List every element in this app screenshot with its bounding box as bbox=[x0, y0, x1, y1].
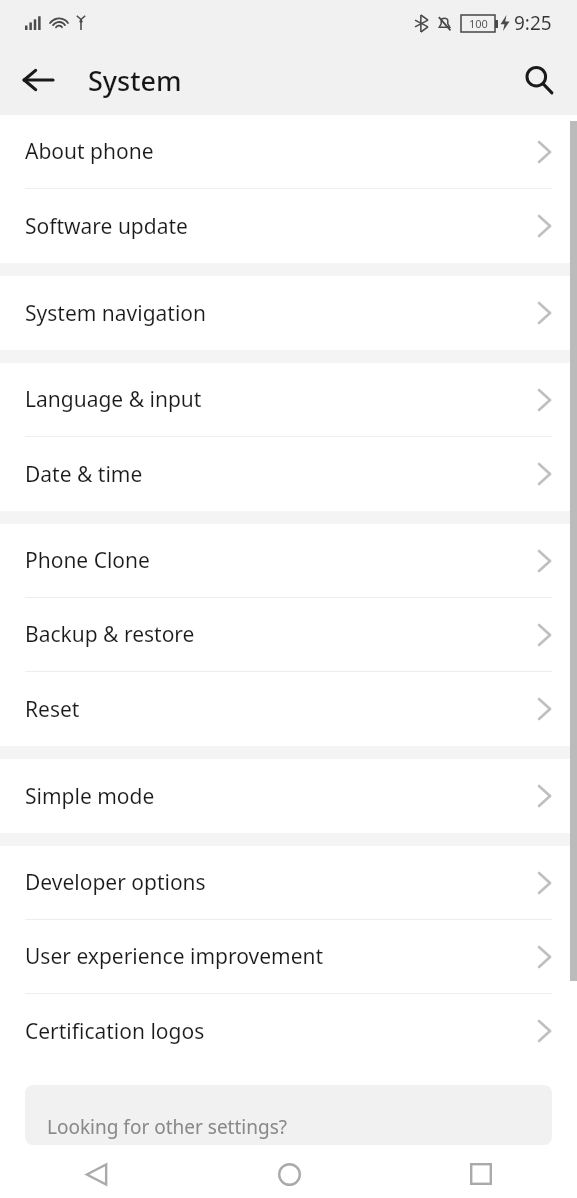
button[interactable]: Date & time bbox=[0, 437, 577, 511]
button[interactable]: System navigation bbox=[0, 276, 577, 350]
button[interactable]: Backup & restore bbox=[0, 598, 577, 671]
button[interactable]: About phone bbox=[0, 115, 577, 188]
staticText: Reset bbox=[25, 695, 538, 724]
button[interactable]: Search bbox=[511, 52, 567, 108]
button[interactable]: Simple mode bbox=[0, 759, 577, 833]
button[interactable]: Software update bbox=[0, 189, 577, 263]
staticText: System navigation bbox=[25, 299, 538, 328]
button[interactable]: Home bbox=[193, 1150, 385, 1198]
button[interactable]: Language & input bbox=[0, 363, 577, 436]
button[interactable]: Developer options bbox=[0, 846, 577, 919]
staticText: Software update bbox=[25, 212, 538, 241]
staticText: User experience improvement bbox=[25, 942, 538, 971]
staticText: 100 bbox=[469, 16, 488, 31]
button[interactable]: Phone Clone bbox=[0, 524, 577, 597]
staticText: Simple mode bbox=[25, 782, 538, 811]
staticText: Phone Clone bbox=[25, 546, 538, 575]
staticText: Backup & restore bbox=[25, 620, 538, 649]
staticText: Looking for other settings? bbox=[47, 1114, 287, 1140]
staticText: About phone bbox=[25, 137, 538, 166]
staticText: Certification logos bbox=[25, 1017, 538, 1046]
button[interactable]: Looking for other settings? bbox=[25, 1085, 552, 1145]
button[interactable]: Recents bbox=[385, 1150, 577, 1198]
button[interactable]: User experience improvement bbox=[0, 920, 577, 993]
button[interactable]: Back bbox=[10, 52, 66, 108]
staticText: 9:25 bbox=[514, 10, 552, 36]
button[interactable]: Certification logos bbox=[0, 994, 577, 1068]
button[interactable]: Reset bbox=[0, 672, 577, 746]
staticText: System bbox=[88, 62, 182, 99]
button[interactable]: Back bbox=[0, 1150, 193, 1198]
staticText: Developer options bbox=[25, 868, 538, 897]
staticText: Date & time bbox=[25, 460, 538, 489]
staticText: Language & input bbox=[25, 385, 538, 414]
